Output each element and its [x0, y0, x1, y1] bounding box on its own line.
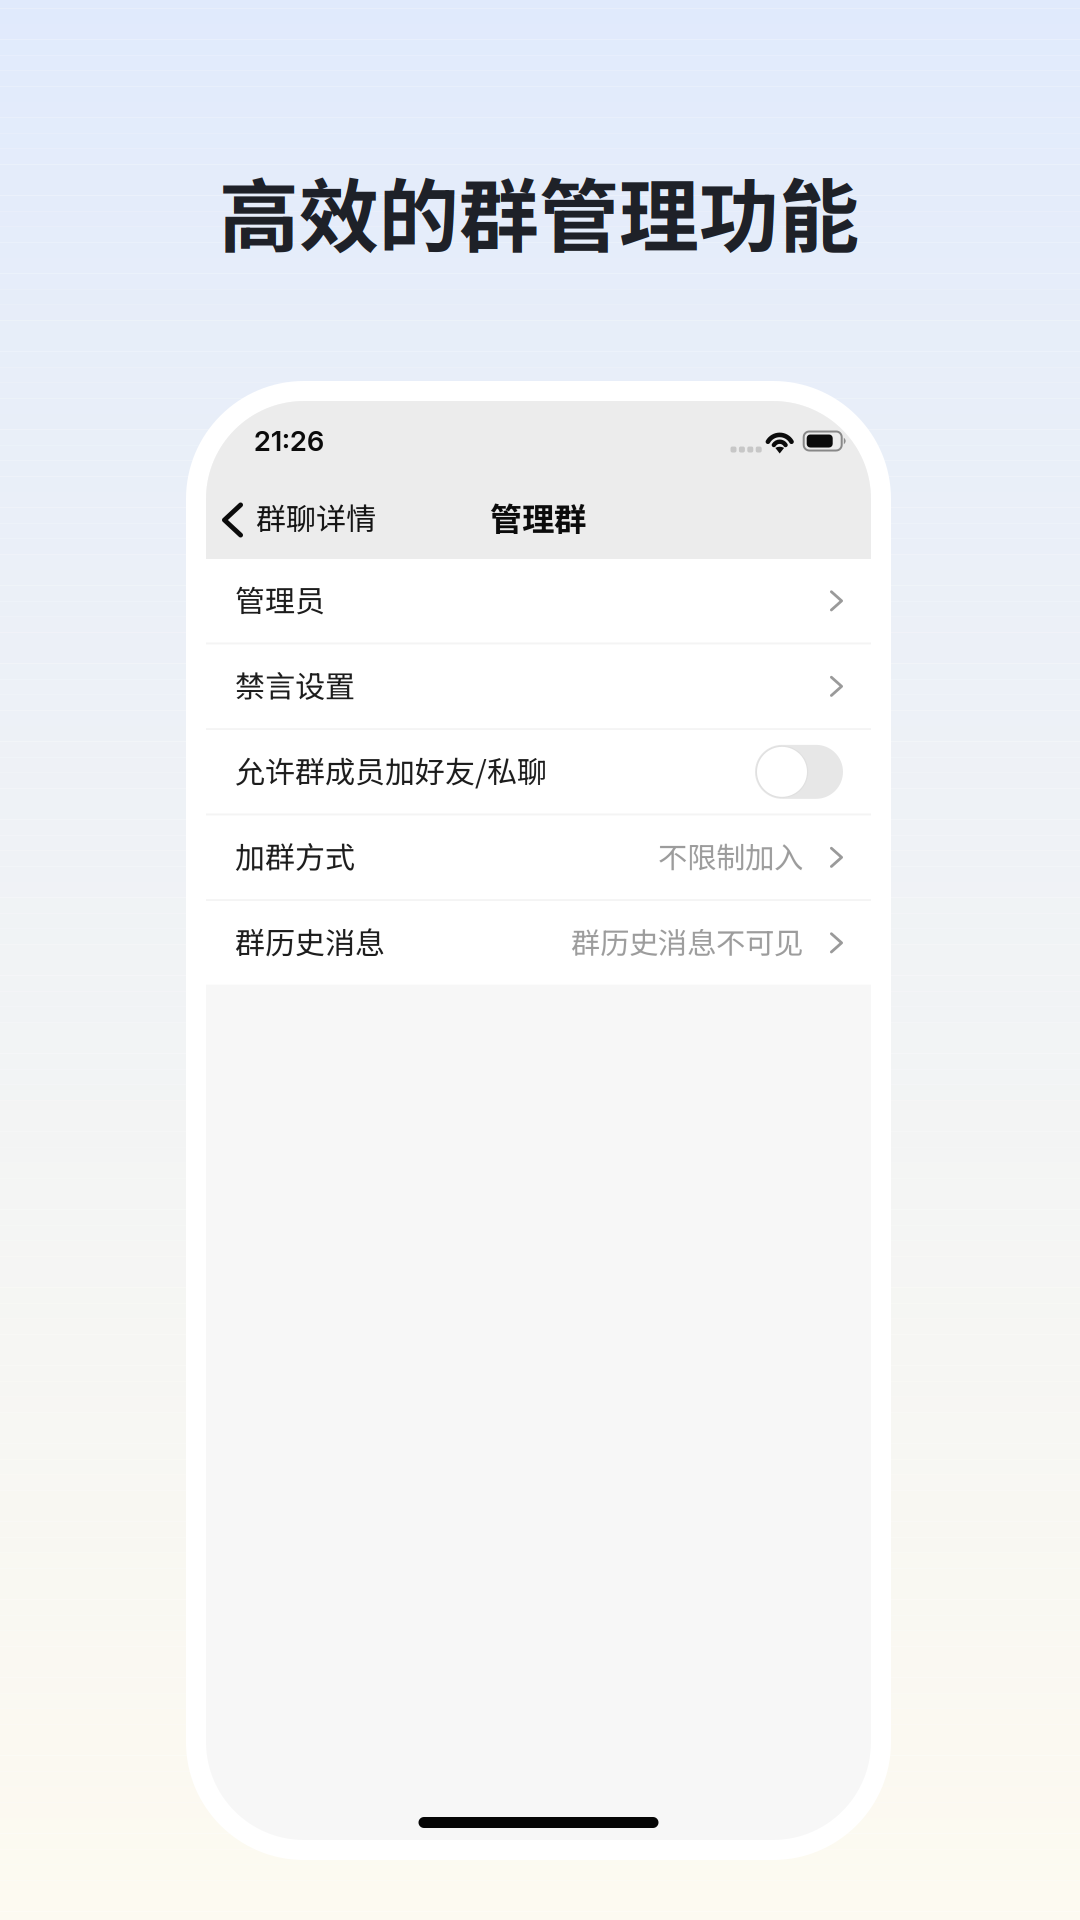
button[interactable]: 禁言设置 — [206, 644, 871, 728]
staticText: 不限制加入 — [658, 834, 803, 877]
button[interactable]: 群聊详情 — [206, 481, 394, 559]
button[interactable]: 允许群成员加好友/私聊 — [206, 730, 871, 814]
staticText: 21:26 — [254, 424, 324, 458]
staticText: 群历史消息 — [235, 919, 385, 962]
staticText: 加群方式 — [235, 834, 355, 877]
button[interactable]: 管理员 — [206, 559, 871, 643]
staticText: 禁言设置 — [235, 663, 355, 706]
staticText: 群聊详情 — [256, 495, 376, 539]
staticText: 群历史消息不可见 — [571, 920, 803, 962]
staticText: 允许群成员加好友/私聊 — [235, 748, 547, 791]
staticText: 管理员 — [235, 577, 325, 620]
button[interactable]: 群历史消息 — [206, 901, 871, 985]
button[interactable]: 加群方式 — [206, 815, 871, 899]
staticText: 高效的群管理功能 — [219, 153, 859, 269]
staticText: 管理群 — [490, 494, 586, 540]
